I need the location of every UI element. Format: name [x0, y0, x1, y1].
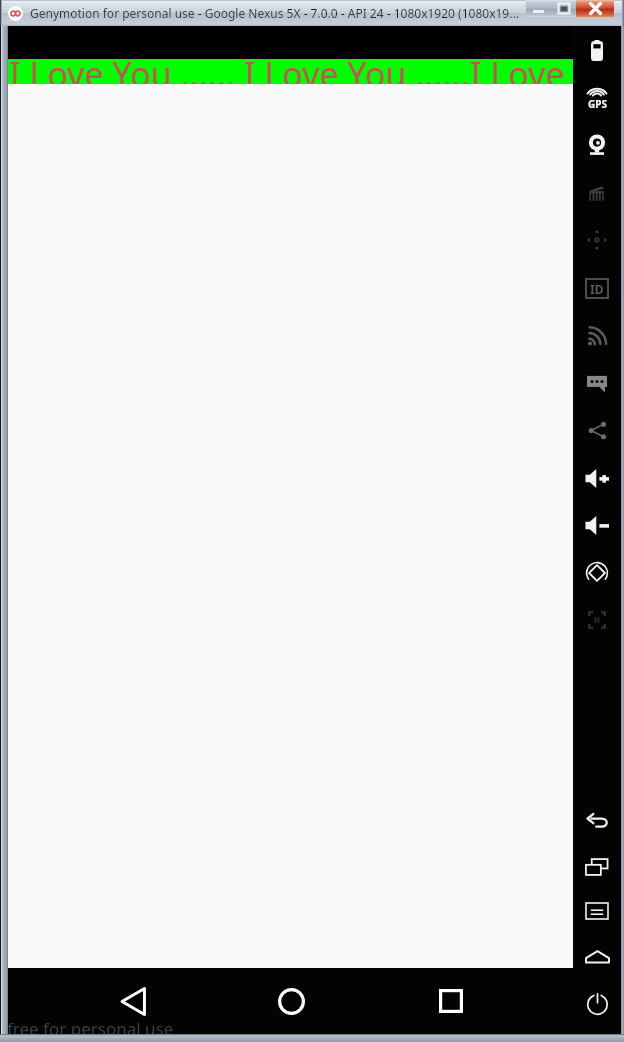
staticText: free for personal use — [7, 1017, 174, 1040]
button[interactable]: Volume up — [573, 462, 621, 494]
staticText: Genymotion for personal use - Google Nex… — [30, 5, 519, 21]
button[interactable]: Minimize — [526, 0, 551, 17]
staticText: ID — [590, 281, 604, 297]
button[interactable]: Battery — [573, 34, 621, 66]
button[interactable]: Home — [573, 941, 621, 973]
button[interactable]: Menu — [573, 895, 621, 927]
button[interactable]: GPS — [573, 82, 621, 114]
button[interactable]: Recents — [371, 968, 531, 1034]
button[interactable]: Share — [573, 414, 621, 446]
button[interactable]: Volume down — [573, 509, 621, 541]
button[interactable]: Video recording — [573, 177, 621, 209]
button[interactable]: Back — [51, 968, 211, 1034]
button[interactable]: Screenshot — [573, 604, 621, 636]
button[interactable]: Close — [576, 0, 614, 17]
staticText: I Love You ...... I Love You ......I Lov… — [9, 59, 573, 76]
button[interactable]: Identifiers — [573, 272, 621, 304]
button[interactable]: Dpad — [573, 224, 621, 256]
staticText: GPS — [588, 97, 607, 111]
button[interactable]: Power — [573, 988, 621, 1020]
button[interactable]: Network — [573, 319, 621, 351]
button[interactable]: Rotate — [573, 557, 621, 589]
button[interactable]: Back — [573, 805, 621, 837]
button[interactable]: Camera — [573, 129, 621, 161]
button[interactable]: Home — [211, 968, 371, 1034]
button[interactable]: Recent apps — [573, 851, 621, 883]
button[interactable]: SMS — [573, 367, 621, 399]
button[interactable]: Maximize — [551, 0, 576, 17]
